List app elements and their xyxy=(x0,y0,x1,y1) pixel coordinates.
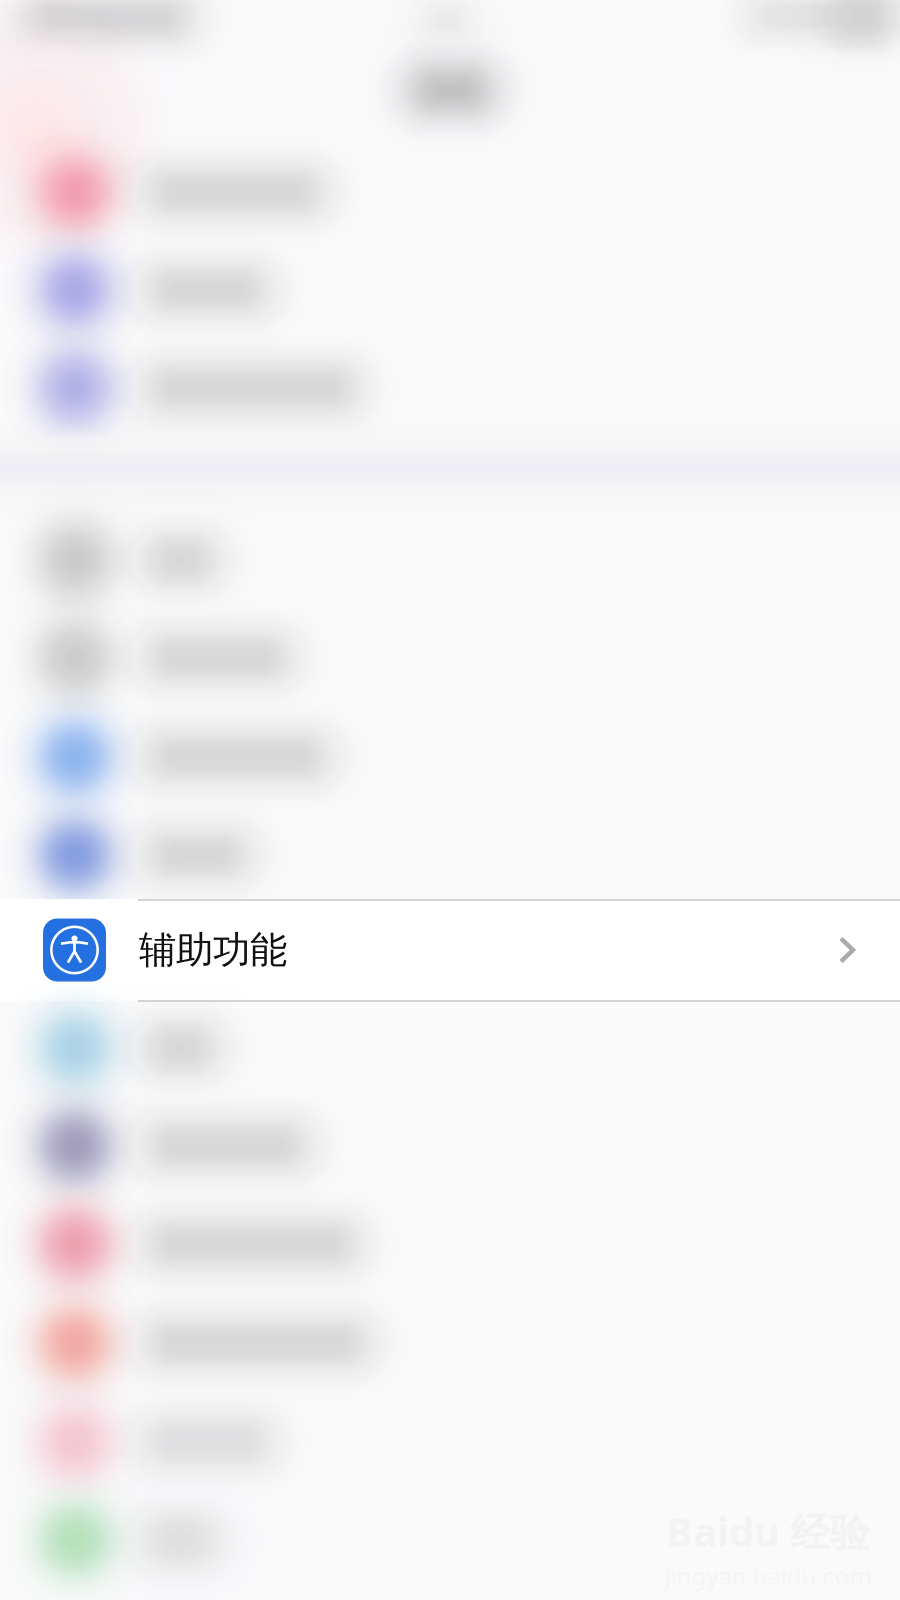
staticText: 辅助功能 xyxy=(139,927,287,973)
button[interactable]: 辅助功能 xyxy=(0,900,900,1000)
